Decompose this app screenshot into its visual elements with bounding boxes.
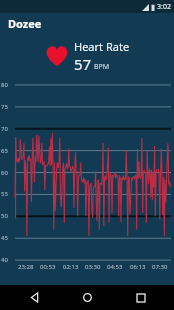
staticText: 00:53 (40, 263, 56, 271)
staticText: BPM (94, 62, 110, 72)
staticText: 60 (1, 169, 8, 177)
staticText: 57 (74, 54, 92, 74)
staticText: 06:13 (130, 263, 146, 271)
staticText: 23:28 (18, 263, 34, 271)
staticText: 03:30 (85, 263, 101, 271)
staticText: 80 (1, 81, 8, 89)
staticText: 3:02 (157, 2, 171, 12)
other: Heart rate (44, 43, 70, 69)
staticText: Dozee (8, 16, 42, 31)
staticText: Heart Rate (74, 39, 130, 54)
button[interactable]: Back (14, 285, 54, 310)
button[interactable]: Home (67, 285, 107, 310)
staticText: 70 (1, 125, 8, 133)
staticText: 75 (1, 103, 8, 111)
staticText: 04:53 (107, 263, 123, 271)
button[interactable]: Heart rate (0, 34, 174, 78)
staticText: 45 (1, 234, 8, 242)
staticText: 07:30 (152, 263, 168, 271)
staticText: 50 (1, 212, 8, 220)
staticText: 02:13 (63, 263, 79, 271)
staticText: 65 (1, 147, 8, 155)
staticText: 55 (1, 190, 8, 198)
button[interactable]: Recent apps (121, 285, 161, 310)
staticText: 40 (1, 256, 8, 264)
